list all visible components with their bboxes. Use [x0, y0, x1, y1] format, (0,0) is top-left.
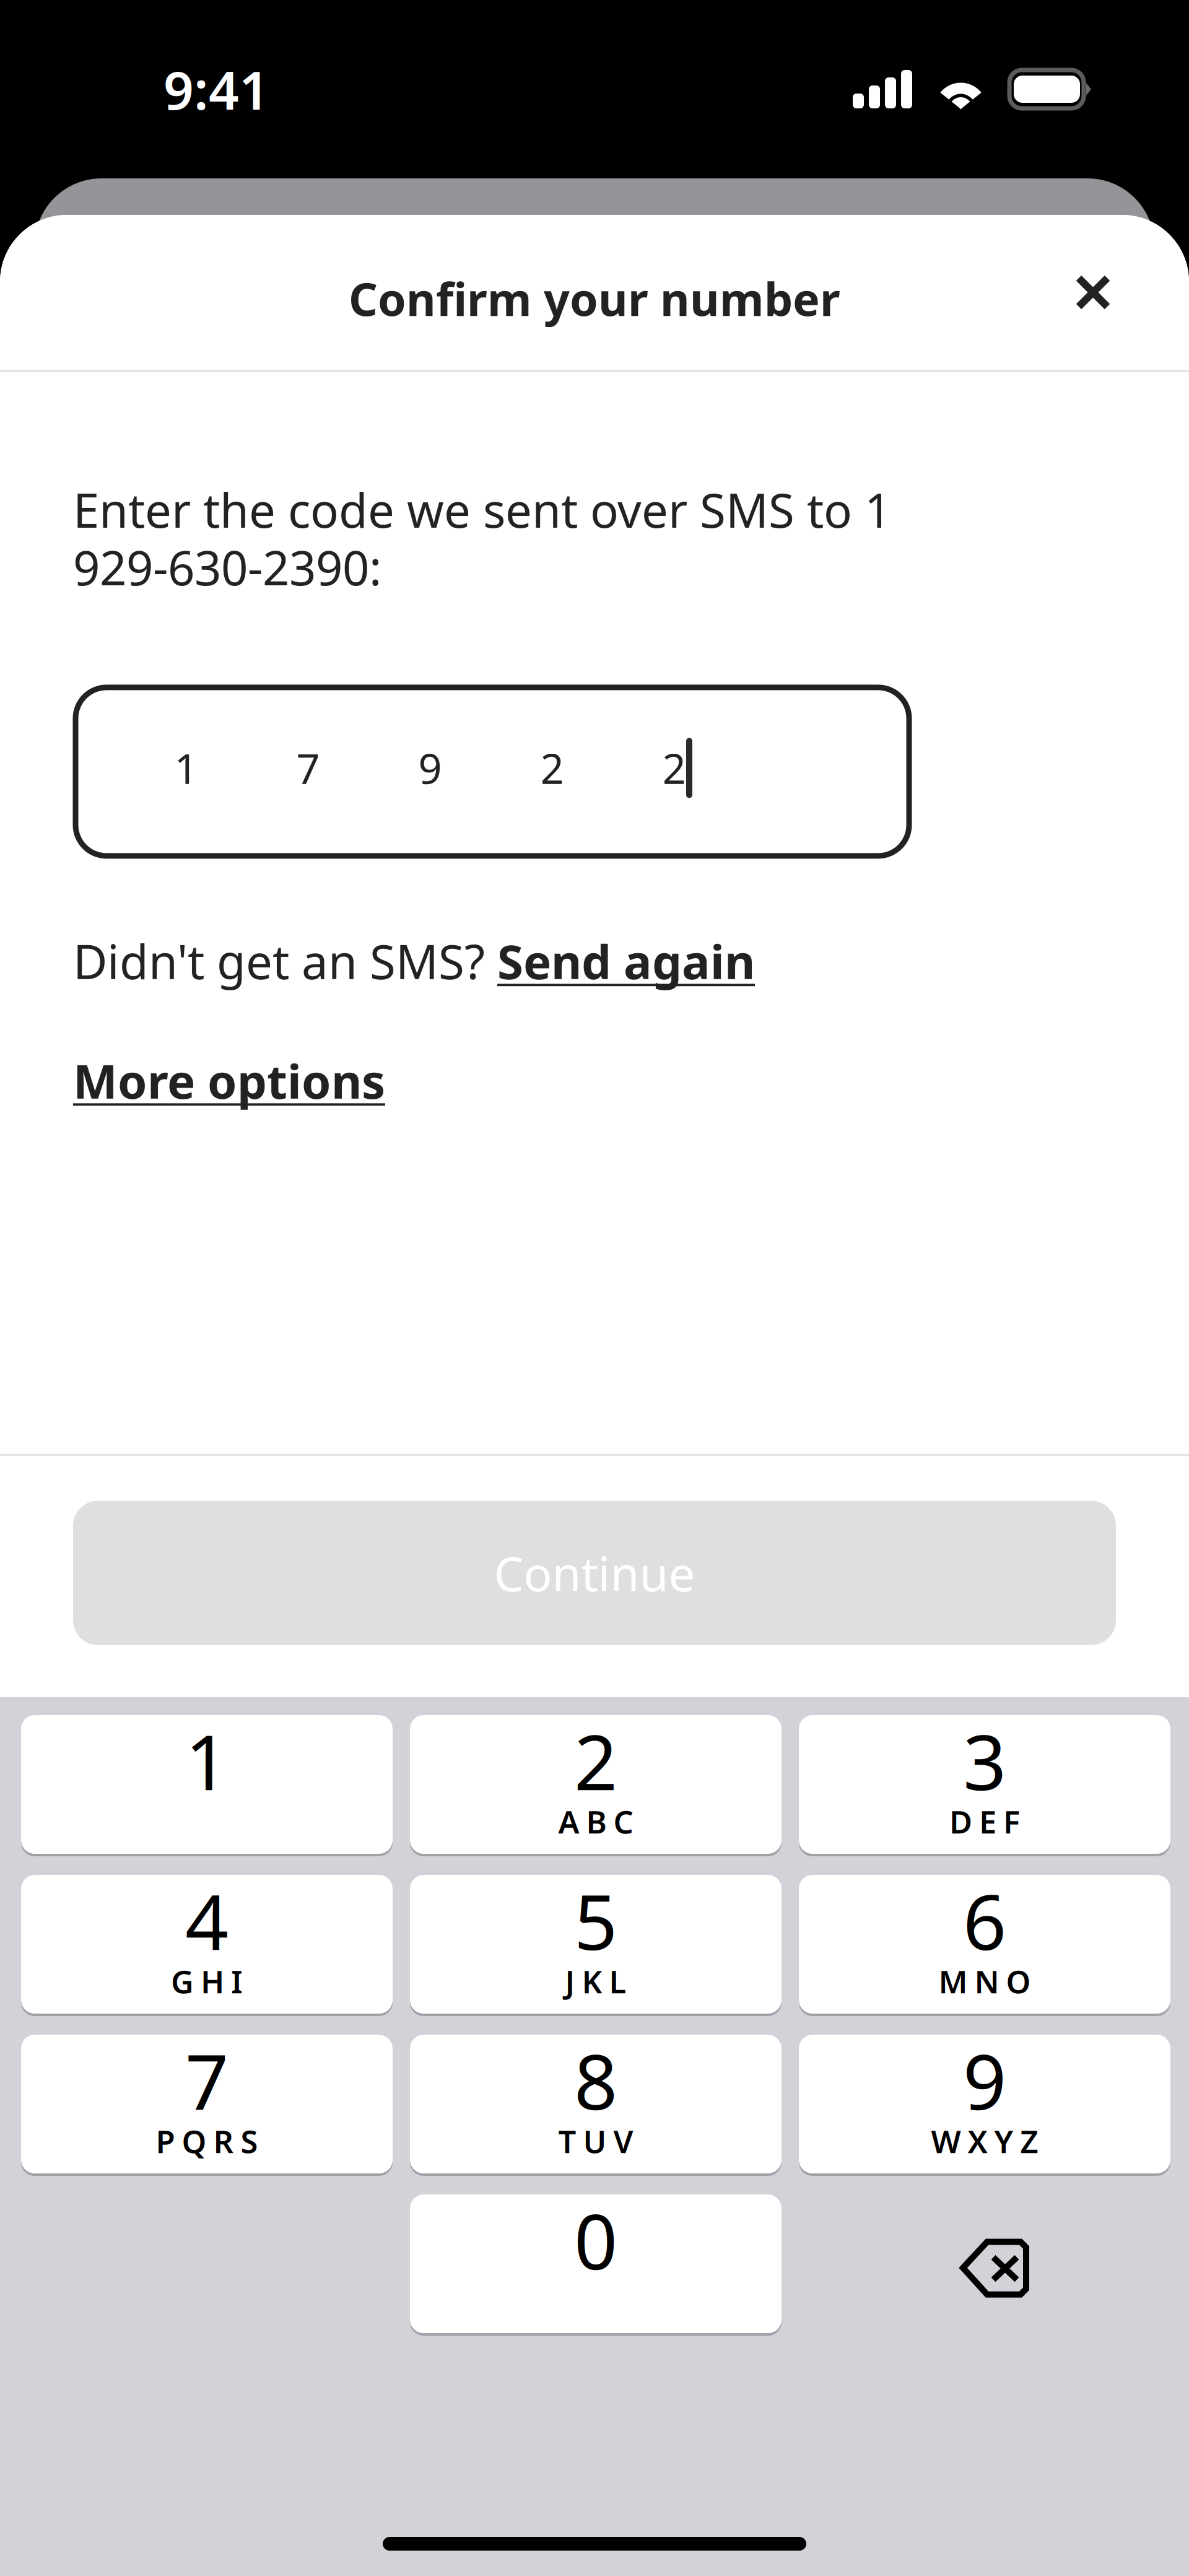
staticText: 4	[185, 1870, 229, 1971]
staticText: 2	[574, 1710, 617, 1811]
staticText: 2	[662, 741, 686, 795]
staticText: JKL	[565, 1960, 626, 2002]
staticText: 3	[963, 1710, 1006, 1811]
staticText: 9	[418, 741, 442, 795]
button[interactable]: 7	[21, 2035, 393, 2176]
staticText: Confirm your number	[349, 268, 840, 329]
staticText: 0	[574, 2190, 617, 2290]
staticText: PQRS	[156, 2120, 258, 2162]
button[interactable]: 9	[799, 2035, 1170, 2176]
staticText: MNO	[939, 1960, 1031, 2002]
staticText: DEF	[949, 1801, 1020, 1842]
staticText: 7	[185, 2030, 229, 2131]
staticText: 5	[574, 1870, 617, 1971]
staticText: 2	[540, 741, 564, 795]
staticText: 8	[574, 2030, 617, 2131]
button[interactable]: 0	[410, 2194, 782, 2336]
button[interactable]: 5	[410, 1875, 782, 2016]
staticText: More options	[73, 1049, 385, 1112]
button[interactable]: 3	[799, 1715, 1170, 1856]
button[interactable]: 1	[21, 1715, 393, 1856]
staticText: 1	[174, 741, 198, 795]
staticText: 9	[963, 2030, 1006, 2131]
button[interactable]: 6	[799, 1875, 1170, 2016]
button[interactable]: 8	[410, 2035, 782, 2176]
staticText: TUV	[558, 2120, 633, 2162]
staticText: Enter the code we sent over SMS to 1 929…	[73, 478, 891, 598]
button[interactable]: 2	[410, 1715, 782, 1856]
staticText: WXYZ	[931, 2120, 1038, 2162]
staticText: ABC	[558, 1801, 633, 1842]
staticText: Didn't get an SMS? Send again	[73, 930, 755, 992]
button[interactable]: Close	[1044, 243, 1189, 341]
staticText: 7	[296, 741, 320, 795]
button[interactable]: Delete	[799, 2194, 1170, 2336]
staticText: 6	[963, 1870, 1006, 1971]
staticText: 1	[185, 1710, 229, 1811]
button[interactable]: 4	[21, 1875, 393, 2016]
staticText: GHI	[171, 1960, 243, 2002]
button[interactable]: Continue	[0, 1456, 1189, 1695]
staticText: 9:41	[163, 54, 269, 124]
staticText: Continue	[494, 1542, 695, 1604]
